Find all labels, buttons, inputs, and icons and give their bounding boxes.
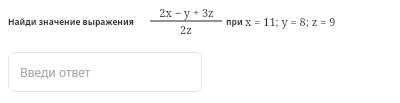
staticText: 2z <box>180 22 192 37</box>
button[interactable]: Введи ответ <box>8 52 202 92</box>
staticText: 2x − y + 3z <box>159 5 214 20</box>
staticText: Найди значение выражения <box>8 16 134 28</box>
staticText: Введи ответ <box>20 64 91 80</box>
staticText: при <box>226 16 245 28</box>
staticText: x = 11; y = 8; z = 9 <box>245 14 336 29</box>
